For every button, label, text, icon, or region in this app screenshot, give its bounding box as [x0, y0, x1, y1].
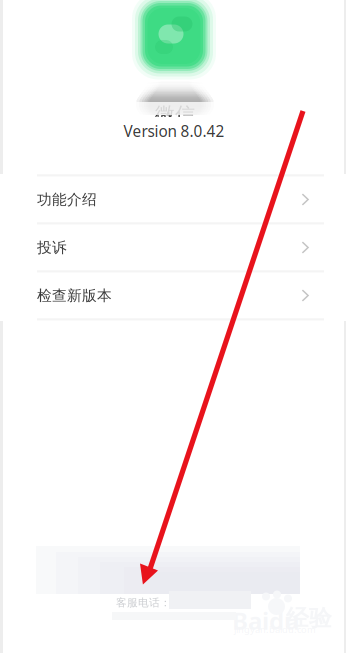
staticText: 微信	[155, 102, 195, 127]
staticText: 功能介绍	[37, 190, 97, 209]
button[interactable]: 功能介绍	[0, 177, 346, 222]
staticText: Baidu	[232, 604, 300, 637]
staticText: 经验	[286, 604, 332, 633]
staticText: 客服电话：	[116, 596, 171, 609]
staticText: Version 8.0.42	[123, 121, 224, 141]
button[interactable]: 投诉	[0, 225, 346, 270]
staticText: jingyan.baidu.com	[234, 623, 316, 636]
staticText: 检查新版本	[37, 286, 112, 305]
button[interactable]: 检查新版本	[0, 273, 346, 318]
staticText: 投诉	[37, 238, 67, 257]
